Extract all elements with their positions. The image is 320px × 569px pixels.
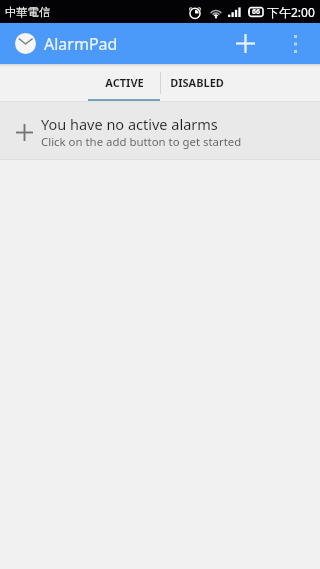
button[interactable]: Add alarm <box>217 23 273 64</box>
staticText: AlarmPad <box>44 33 118 55</box>
staticText: 中華電信 <box>5 5 51 19</box>
staticText: You have no active alarms <box>41 114 218 134</box>
staticText: Click on the add button to get started <box>41 134 242 150</box>
staticText: DISABLED <box>170 75 224 90</box>
button[interactable]: DISABLED <box>161 64 233 101</box>
staticText: ACTIVE <box>105 75 144 90</box>
button[interactable]: You have no active alarms <box>0 102 320 159</box>
button[interactable]: ACTIVE <box>88 64 160 101</box>
button[interactable]: More options <box>273 23 318 64</box>
staticText: 66 <box>252 7 261 17</box>
staticText: 下午2:00 <box>267 4 315 20</box>
